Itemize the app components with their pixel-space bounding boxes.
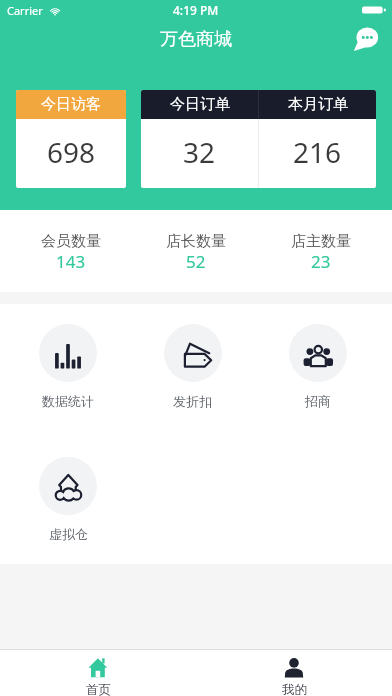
button[interactable]: 我的 xyxy=(196,650,392,696)
button[interactable]: 招商 xyxy=(255,324,380,409)
staticText: 数据统计 xyxy=(42,393,94,409)
staticText: 今日订单 xyxy=(170,95,230,114)
button[interactable]: 会员数量 xyxy=(9,232,133,274)
button[interactable]: 首页 xyxy=(0,650,196,696)
staticText: 会员数量 xyxy=(41,232,101,251)
staticText: 今日访客 xyxy=(41,95,101,114)
staticText: 143 xyxy=(56,250,86,273)
button[interactable]: Messages xyxy=(353,25,380,52)
staticText: Carrier xyxy=(7,3,43,18)
staticText: 发折扣 xyxy=(173,393,212,409)
button[interactable]: 今日访客 xyxy=(16,90,126,188)
button[interactable]: 216 xyxy=(259,119,376,188)
staticText: 4:19 PM xyxy=(173,2,219,18)
staticText: 本月订单 xyxy=(288,95,348,114)
button[interactable]: 今日订单 xyxy=(141,90,258,119)
staticText: 虚拟仓 xyxy=(49,526,88,542)
button[interactable]: 本月订单 xyxy=(259,90,376,119)
staticText: 32 xyxy=(183,133,216,171)
button[interactable]: 店长数量 xyxy=(133,232,258,274)
staticText: 我的 xyxy=(282,682,307,696)
button[interactable]: 发折扣 xyxy=(130,324,255,409)
staticText: 首页 xyxy=(86,682,111,696)
staticText: 万色商城 xyxy=(160,28,232,51)
staticText: 店主数量 xyxy=(291,232,351,251)
button[interactable]: 32 xyxy=(141,119,258,188)
button[interactable]: 虚拟仓 xyxy=(6,457,130,542)
staticText: 招商 xyxy=(305,393,331,409)
button[interactable]: 店主数量 xyxy=(258,232,383,274)
staticText: 216 xyxy=(293,133,342,171)
staticText: 698 xyxy=(47,133,96,171)
button[interactable]: 数据统计 xyxy=(6,324,130,409)
staticText: 店长数量 xyxy=(166,232,226,251)
staticText: 23 xyxy=(311,250,331,273)
staticText: 52 xyxy=(186,250,206,273)
